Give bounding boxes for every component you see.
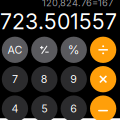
button[interactable]: 4 (2, 95, 28, 120)
button[interactable]: % (61, 37, 87, 63)
staticText: 6 (70, 102, 77, 115)
button[interactable]: 6 (61, 95, 87, 120)
staticText: AC (7, 43, 22, 56)
staticText: 9 (70, 73, 77, 86)
staticText: 5 (41, 102, 47, 115)
staticText: 723.501557 (0, 8, 117, 34)
staticText: 120,824.76=167 (42, 0, 113, 8)
button[interactable]: Multiply (90, 66, 116, 92)
button[interactable]: Divide (90, 37, 116, 63)
staticText: 4 (11, 102, 18, 115)
staticText: 7 (12, 73, 18, 86)
button[interactable]: AC (2, 37, 28, 63)
button[interactable]: Minus (90, 95, 116, 120)
button[interactable]: 8 (31, 66, 57, 92)
staticText: 8 (41, 73, 48, 86)
staticText: % (68, 42, 80, 57)
button[interactable]: 7 (2, 66, 28, 92)
button[interactable]: 9 (61, 66, 87, 92)
button[interactable]: 5 (31, 95, 57, 120)
button[interactable]: Plus minus (31, 37, 57, 63)
